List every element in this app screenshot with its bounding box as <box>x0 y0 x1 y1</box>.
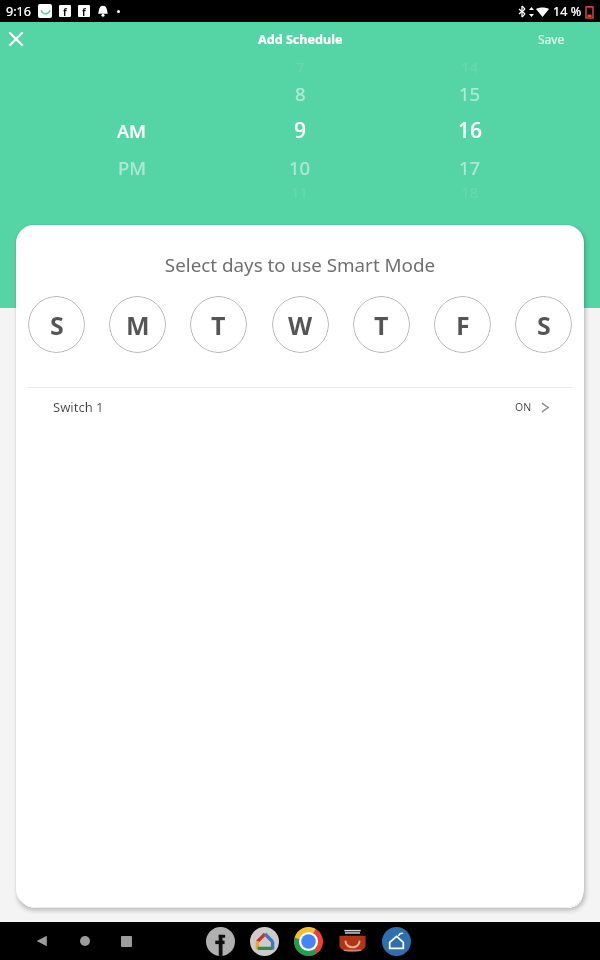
button[interactable]: Home <box>71 927 99 955</box>
staticText: Switch 1 <box>53 398 104 416</box>
button[interactable]: Back <box>28 927 56 955</box>
staticText: T <box>374 308 389 342</box>
staticText: F <box>456 308 470 342</box>
button[interactable]: S <box>28 296 85 353</box>
staticText: AM <box>117 118 147 143</box>
button[interactable]: M <box>109 296 166 353</box>
staticText: PM <box>118 155 146 180</box>
staticText: W <box>288 308 313 342</box>
button[interactable]: Switch 1 <box>16 388 584 426</box>
staticText: ON <box>515 400 532 414</box>
button[interactable]: 8 <box>255 74 345 112</box>
button[interactable]: Recents <box>112 927 140 955</box>
button[interactable]: 17 <box>425 148 515 186</box>
staticText: f <box>63 5 67 17</box>
button[interactable]: Close <box>0 23 32 55</box>
button[interactable]: PM <box>87 148 177 186</box>
button[interactable]: Chrome <box>294 927 323 956</box>
button[interactable]: Google Home <box>250 927 279 956</box>
staticText: f <box>82 5 86 17</box>
staticText: M <box>126 308 150 342</box>
staticText: 15 <box>459 81 481 106</box>
staticText: 16 <box>458 116 483 145</box>
staticText: 7 <box>296 57 305 77</box>
staticText: S <box>537 308 551 342</box>
button[interactable]: Facebook <box>206 927 235 956</box>
staticText: Save <box>538 31 565 47</box>
button[interactable]: W <box>272 296 329 353</box>
button[interactable]: S <box>515 296 572 353</box>
staticText: Add Schedule <box>258 31 343 48</box>
staticText: 8 <box>295 81 306 106</box>
button[interactable]: Smart Home <box>382 927 411 956</box>
staticText: 18 <box>461 182 479 202</box>
button[interactable]: Save <box>518 23 600 55</box>
button[interactable]: 18 <box>425 173 515 211</box>
button[interactable]: T <box>190 296 247 353</box>
staticText: 14 <box>461 57 479 77</box>
button[interactable]: AliExpress <box>338 927 367 956</box>
button[interactable]: 10 <box>255 148 345 186</box>
button[interactable]: 11 <box>255 173 345 211</box>
button[interactable]: 16 <box>425 111 515 149</box>
staticText: 17 <box>459 155 481 180</box>
staticText: 14 % <box>553 3 582 20</box>
staticText: 9 <box>294 116 307 145</box>
staticText: T <box>211 308 226 342</box>
button[interactable]: 15 <box>425 74 515 112</box>
staticText: 9:16 <box>6 3 31 20</box>
staticText: S <box>50 308 64 342</box>
staticText: 11 <box>291 182 309 202</box>
staticText: Select days to use Smart Mode <box>16 252 584 278</box>
button[interactable]: 9 <box>255 111 345 149</box>
button[interactable]: AM <box>87 111 177 149</box>
button[interactable]: T <box>353 296 410 353</box>
button[interactable]: F <box>434 296 491 353</box>
staticText: 10 <box>289 155 311 180</box>
